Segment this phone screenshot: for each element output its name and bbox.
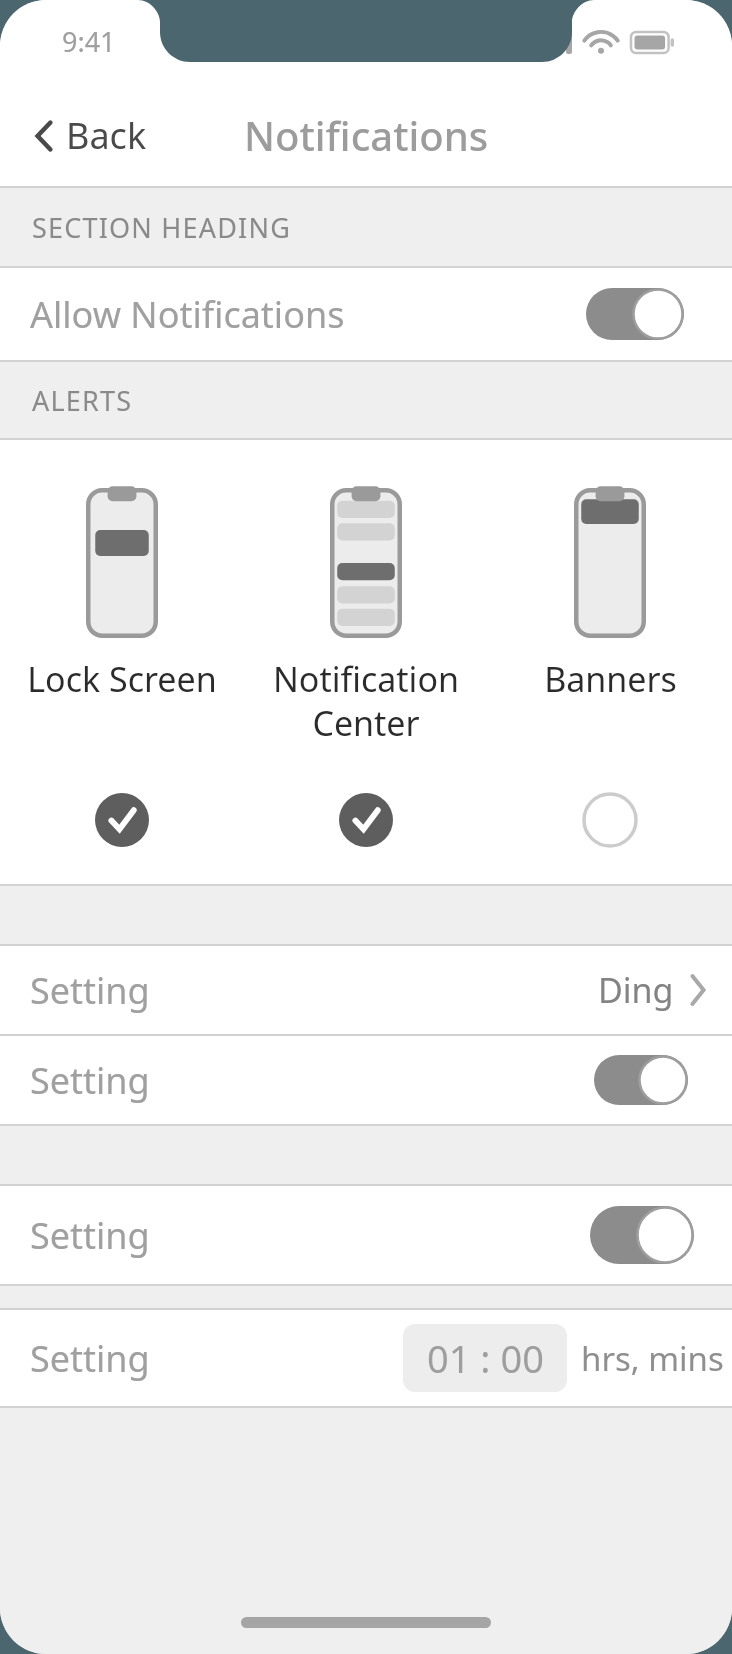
button[interactable]: Notification Center bbox=[244, 488, 488, 884]
button[interactable]: Back bbox=[26, 101, 155, 170]
button[interactable]: Toggle bbox=[594, 1055, 688, 1105]
button[interactable]: Banners bbox=[488, 488, 732, 884]
button[interactable]: 01 : 00 bbox=[403, 1324, 567, 1392]
staticText: hrs, mins bbox=[581, 1336, 724, 1381]
staticText: 9:41 bbox=[62, 23, 116, 60]
staticText: Notification Center bbox=[273, 656, 459, 746]
staticText: SECTION HEADING bbox=[32, 209, 292, 246]
button[interactable]: Toggle bbox=[586, 288, 684, 340]
button[interactable]: Selected bbox=[338, 792, 394, 848]
staticText: Setting bbox=[30, 1334, 150, 1383]
staticText: ALERTS bbox=[32, 382, 133, 419]
button[interactable]: Not selected bbox=[582, 792, 638, 848]
button[interactable]: Setting bbox=[0, 1036, 732, 1124]
staticText: Setting bbox=[30, 1056, 150, 1105]
staticText: Allow Notifications bbox=[30, 290, 345, 339]
staticText: Setting bbox=[30, 966, 150, 1015]
staticText: Setting bbox=[30, 1211, 150, 1260]
staticText: Lock Screen bbox=[27, 656, 217, 702]
button[interactable]: Selected bbox=[94, 792, 150, 848]
staticText: Back bbox=[66, 111, 147, 160]
staticText: Banners bbox=[544, 656, 677, 702]
button[interactable]: Allow Notifications bbox=[0, 268, 732, 360]
button[interactable]: Setting bbox=[0, 1310, 732, 1406]
button[interactable]: Setting bbox=[0, 1186, 732, 1284]
button[interactable]: Toggle bbox=[590, 1206, 694, 1264]
staticText: Notifications bbox=[244, 108, 489, 162]
staticText: Ding bbox=[598, 967, 674, 1013]
button[interactable]: Setting bbox=[0, 946, 732, 1034]
button[interactable]: Lock Screen bbox=[0, 488, 244, 884]
staticText: 01 : 00 bbox=[427, 1332, 544, 1384]
